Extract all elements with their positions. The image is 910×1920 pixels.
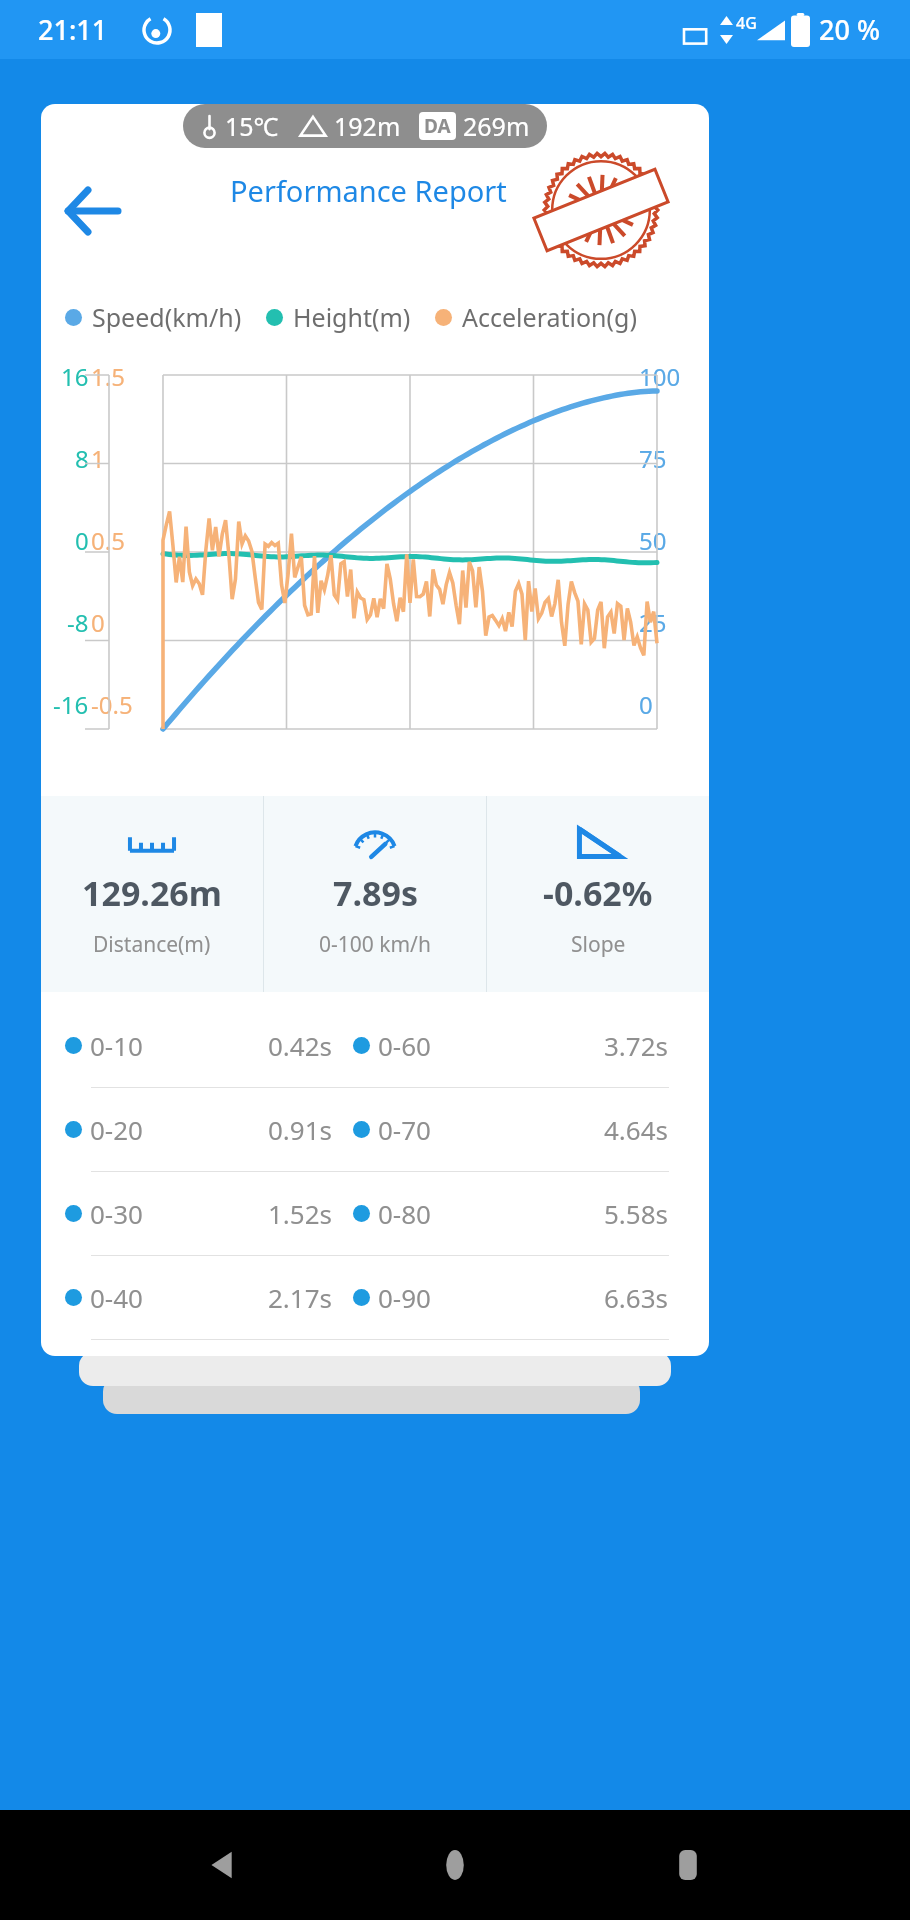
staticText: 0.91s bbox=[268, 1112, 333, 1147]
staticText: 8 bbox=[75, 442, 89, 475]
button[interactable]: Home bbox=[433, 1843, 477, 1887]
staticText: 5.58s bbox=[604, 1196, 669, 1231]
staticText: -16 bbox=[53, 688, 89, 721]
staticText: Acceleration(g) bbox=[462, 300, 637, 334]
staticText: 0-30 bbox=[90, 1196, 143, 1231]
staticText: 0 bbox=[75, 524, 89, 557]
staticText: 4G bbox=[736, 12, 757, 34]
staticText: DA bbox=[424, 113, 451, 139]
staticText: 3.72s bbox=[604, 1028, 669, 1063]
staticText: 25 bbox=[639, 606, 667, 639]
staticText: 0 bbox=[639, 688, 653, 721]
staticText: 0-40 bbox=[90, 1280, 143, 1315]
staticText: -8 bbox=[67, 606, 89, 639]
staticText: 0-70 bbox=[378, 1112, 431, 1147]
staticText: Speed(km/h) bbox=[92, 300, 242, 334]
staticText: 129.26m bbox=[82, 870, 222, 916]
button[interactable]: 0-30 bbox=[41, 1172, 709, 1255]
button[interactable]: 0-10 bbox=[41, 1004, 709, 1087]
staticText: 7.89s bbox=[333, 870, 418, 916]
button[interactable]: Back bbox=[200, 1843, 244, 1887]
staticText: 15℃ bbox=[225, 109, 279, 143]
staticText: 75 bbox=[639, 442, 667, 475]
staticText: 50 bbox=[639, 524, 667, 557]
staticText: 21:11 bbox=[38, 11, 108, 48]
staticText: 1 bbox=[91, 442, 105, 475]
staticText: 0-90 bbox=[378, 1280, 431, 1315]
staticText: Height(m) bbox=[293, 300, 411, 334]
staticText: 0.42s bbox=[268, 1028, 333, 1063]
button[interactable]: 0-20 bbox=[41, 1088, 709, 1171]
button[interactable]: Recents bbox=[666, 1843, 710, 1887]
staticText: 2.17s bbox=[268, 1280, 333, 1315]
button[interactable]: 129.26m bbox=[41, 796, 263, 992]
staticText: 0-20 bbox=[90, 1112, 143, 1147]
staticText: 16 bbox=[61, 360, 89, 393]
staticText: Performance Report bbox=[230, 171, 507, 210]
staticText: Slope bbox=[571, 930, 626, 959]
staticText: 4.64s bbox=[604, 1112, 669, 1147]
staticText: 0 bbox=[91, 606, 105, 639]
staticText: 6.63s bbox=[604, 1280, 669, 1315]
staticText: 1.5 bbox=[91, 360, 125, 393]
staticText: 0-100 km/h bbox=[319, 930, 431, 959]
button[interactable]: 0-40 bbox=[41, 1256, 709, 1339]
staticText: 269m bbox=[463, 109, 530, 143]
button[interactable]: 7.89s bbox=[264, 796, 486, 992]
staticText: 0-60 bbox=[378, 1028, 431, 1063]
staticText: 0.5 bbox=[91, 524, 125, 557]
staticText: 192m bbox=[334, 109, 401, 143]
staticText: Distance(m) bbox=[93, 930, 211, 959]
staticText: 0-10 bbox=[90, 1028, 143, 1063]
staticText: 1.52s bbox=[268, 1196, 333, 1231]
staticText: 100 bbox=[639, 360, 681, 393]
staticText: -0.62% bbox=[543, 870, 653, 916]
staticText: 0-80 bbox=[378, 1196, 431, 1231]
staticText: 20 % bbox=[819, 11, 880, 48]
staticText: -0.5 bbox=[91, 688, 133, 721]
button[interactable]: -0.62% bbox=[487, 796, 709, 992]
button[interactable]: Back bbox=[61, 186, 121, 236]
